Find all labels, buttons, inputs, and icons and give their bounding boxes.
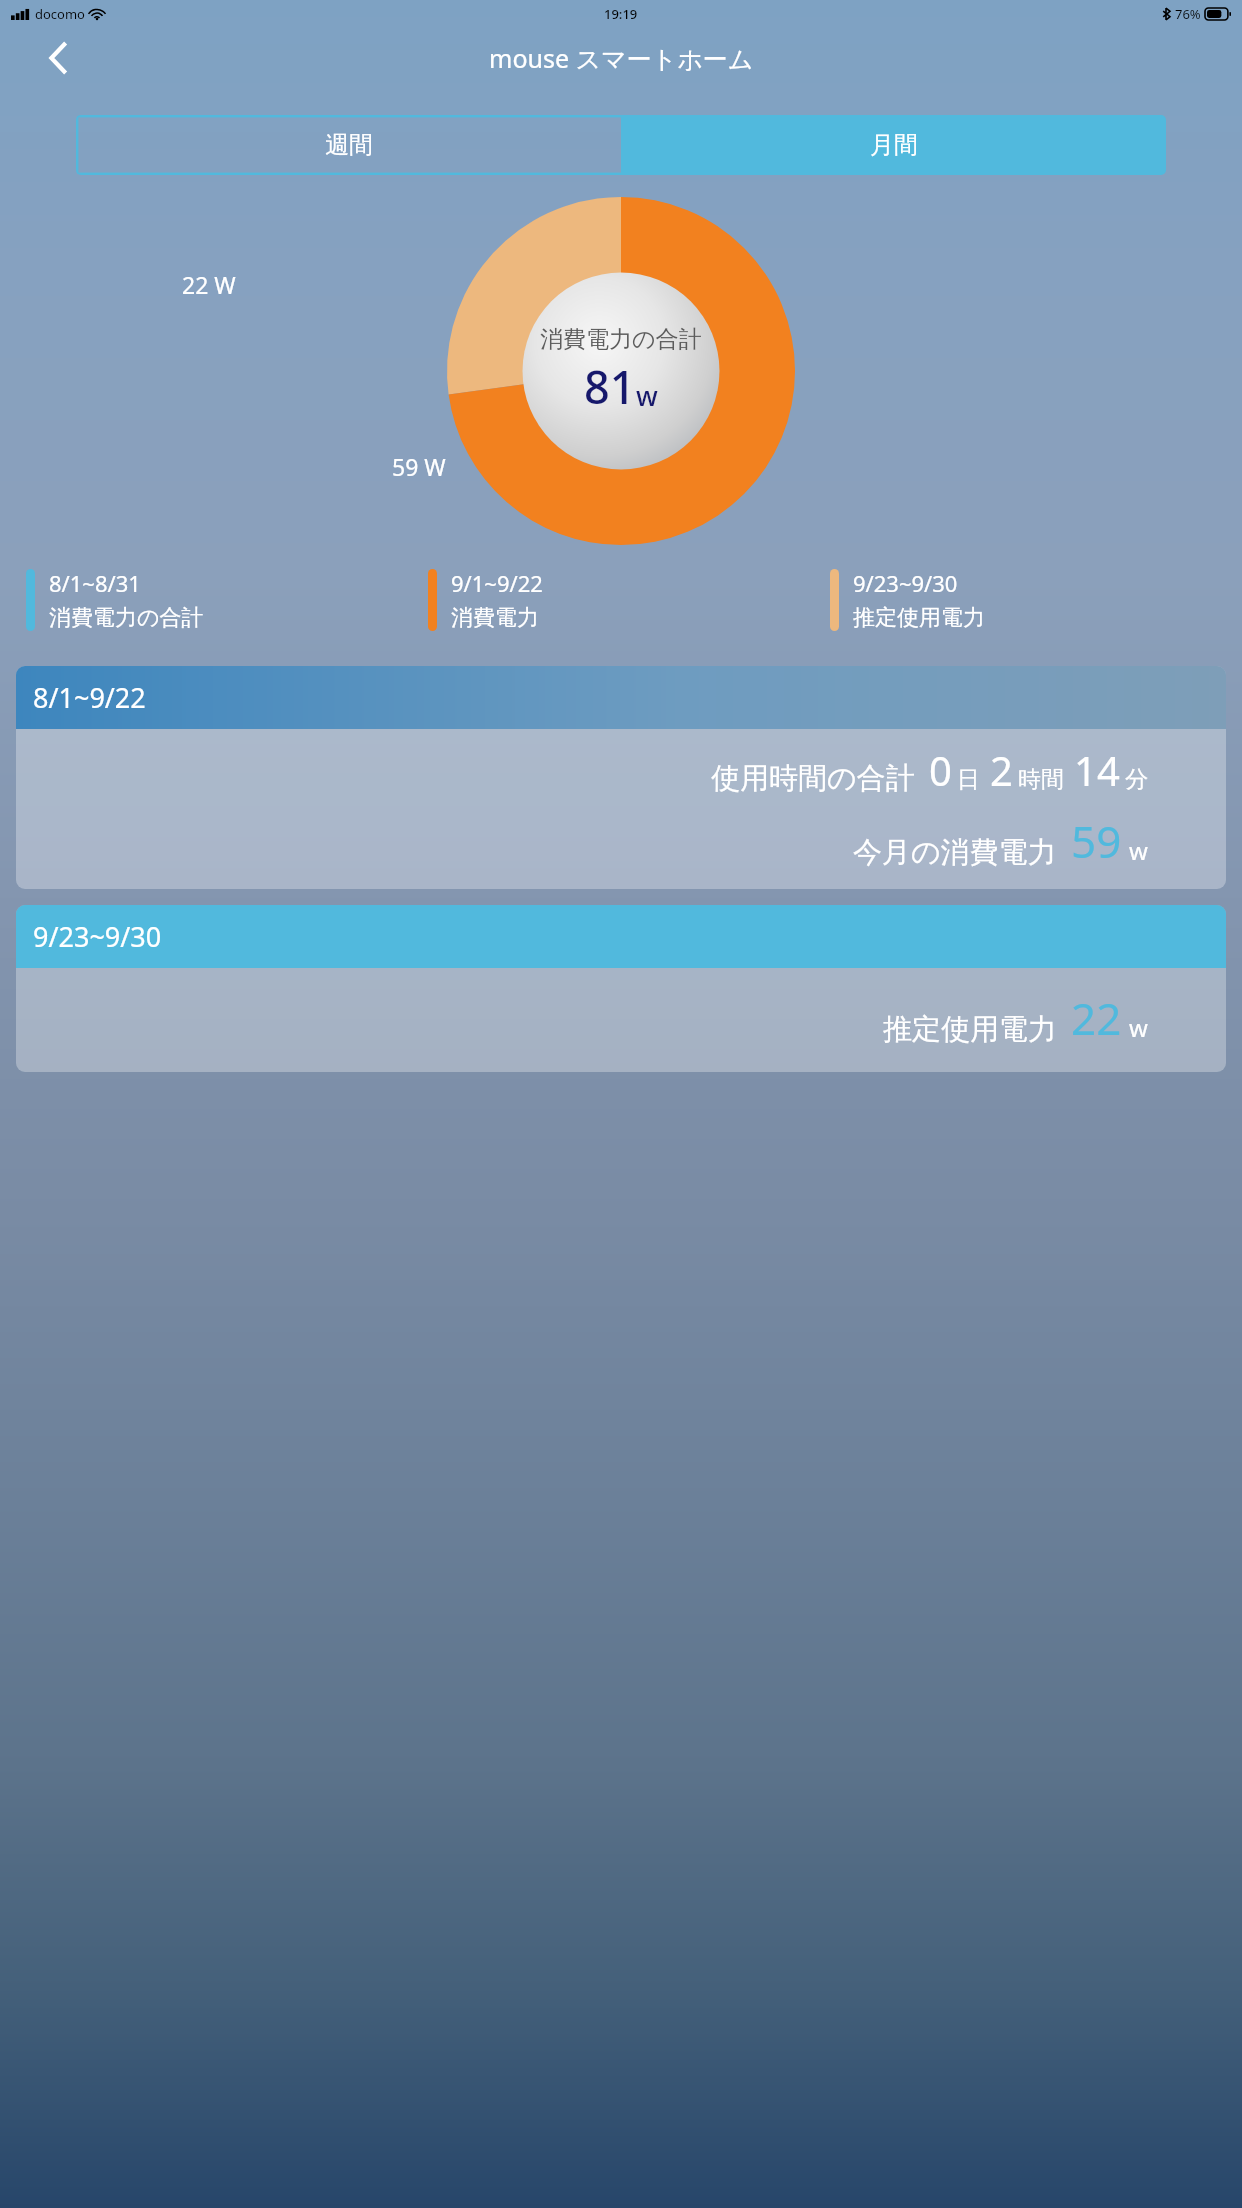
staticText: w xyxy=(636,377,658,414)
staticText: 9/23~9/30 xyxy=(853,568,958,598)
staticText: 19:19 xyxy=(604,5,638,23)
staticText: 81 xyxy=(584,356,636,417)
staticText: 76% xyxy=(1175,5,1201,23)
staticText: 時間 xyxy=(1018,765,1064,794)
button[interactable]: Back xyxy=(38,38,78,78)
staticText: 月間 xyxy=(870,130,918,160)
button[interactable]: 8/1~8/31 xyxy=(26,552,428,648)
staticText: w xyxy=(1129,1011,1148,1044)
staticText: 8/1~8/31 xyxy=(49,568,141,598)
button[interactable]: 9/23~9/30 xyxy=(830,552,1232,648)
staticText: 59 xyxy=(1071,811,1122,871)
staticText: 8/1~9/22 xyxy=(33,679,146,716)
button[interactable]: 週間 xyxy=(76,115,621,175)
staticText: 日 xyxy=(957,765,980,794)
button[interactable]: 9/1~9/22 xyxy=(428,552,830,648)
staticText: 9/1~9/22 xyxy=(451,568,543,598)
staticText: 推定使用電力 xyxy=(883,1011,1057,1048)
staticText: docomo xyxy=(35,5,85,23)
button[interactable]: 9/23~9/30 xyxy=(16,905,1226,1072)
staticText: 週間 xyxy=(325,130,373,160)
button[interactable]: 月間 xyxy=(621,115,1166,175)
staticText: 22 xyxy=(1071,988,1122,1048)
staticText: 使用時間の合計 xyxy=(711,760,915,797)
staticText: 14 xyxy=(1074,743,1120,797)
staticText: 0 xyxy=(929,743,952,797)
staticText: w xyxy=(1129,834,1148,867)
staticText: 9/23~9/30 xyxy=(33,918,162,955)
button[interactable]: 8/1~9/22 xyxy=(16,666,1226,889)
staticText: mouse スマートホーム xyxy=(489,41,754,75)
staticText: 2 xyxy=(990,743,1013,797)
staticText: 消費電力の合計 xyxy=(49,604,204,632)
staticText: 59 W xyxy=(392,451,446,482)
staticText: 消費電力の合計 xyxy=(540,325,702,354)
staticText: 22 W xyxy=(182,269,236,300)
staticText: 消費電力 xyxy=(451,604,539,632)
staticText: 推定使用電力 xyxy=(853,604,985,632)
staticText: 分 xyxy=(1125,765,1148,794)
staticText: 今月の消費電力 xyxy=(853,834,1057,871)
